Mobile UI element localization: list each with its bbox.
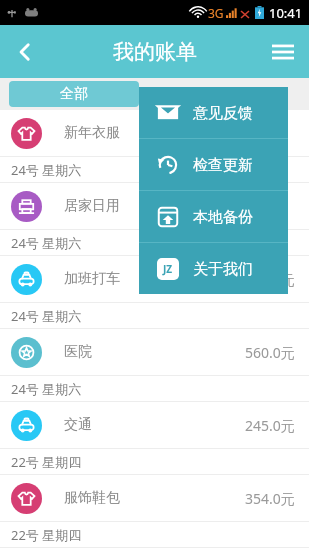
button[interactable]: 本地备份 bbox=[139, 191, 288, 242]
staticText: 245.0元 bbox=[245, 416, 295, 435]
staticText: 全部 bbox=[60, 85, 88, 103]
staticText: 关于我们 bbox=[193, 260, 253, 279]
staticText: 354.0元 bbox=[245, 489, 295, 508]
staticText: 24号 星期六 bbox=[11, 307, 82, 325]
staticText: 10:41 bbox=[269, 4, 303, 22]
staticText: 居家日用 bbox=[64, 197, 120, 215]
button[interactable]: 居家日用 bbox=[0, 183, 309, 229]
staticText: 新年衣服 bbox=[64, 124, 120, 142]
button[interactable]: 关于我们 bbox=[139, 243, 288, 294]
button[interactable]: 服饰鞋包 bbox=[0, 475, 309, 521]
button[interactable]: Back bbox=[0, 27, 50, 77]
staticText: 服饰鞋包 bbox=[64, 489, 120, 507]
staticText: 本地备份 bbox=[193, 208, 253, 227]
button[interactable]: 交通 bbox=[0, 402, 309, 448]
button[interactable]: 全部 bbox=[9, 81, 139, 107]
staticText: 560.0元 bbox=[245, 343, 295, 362]
staticText: 检查更新 bbox=[193, 156, 253, 175]
button[interactable]: 新年衣服 bbox=[0, 110, 309, 156]
staticText: 意见反馈 bbox=[193, 104, 253, 123]
staticText: 24号 星期六 bbox=[11, 380, 82, 398]
staticText: 交通 bbox=[64, 416, 92, 434]
staticText: 24号 星期六 bbox=[11, 234, 82, 252]
staticText: 22号 星期四 bbox=[11, 526, 82, 544]
staticText: 我的账单 bbox=[113, 39, 197, 65]
button[interactable]: 检查更新 bbox=[139, 139, 288, 190]
staticText: 22号 星期四 bbox=[11, 453, 82, 471]
staticText: 140.0元 bbox=[245, 270, 295, 289]
button[interactable]: Menu bbox=[257, 26, 309, 78]
staticText: 24号 星期六 bbox=[11, 161, 82, 179]
button[interactable]: 加班打车 bbox=[0, 256, 309, 302]
staticText: 加班打车 bbox=[64, 270, 120, 288]
button[interactable]: 医院 bbox=[0, 329, 309, 375]
staticText: 3G bbox=[208, 5, 224, 21]
staticText: 医院 bbox=[64, 343, 92, 361]
button[interactable]: 意见反馈 bbox=[139, 87, 288, 138]
staticText: JZ bbox=[163, 262, 173, 276]
